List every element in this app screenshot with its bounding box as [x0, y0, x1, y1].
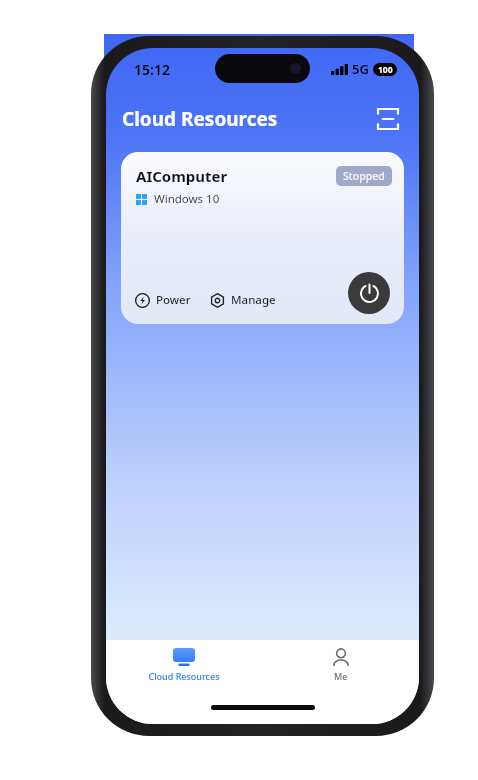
staticText: Power — [156, 292, 191, 308]
button[interactable]: AIComputer — [121, 152, 404, 324]
button[interactable]: Power on — [348, 272, 390, 314]
staticText: AIComputer — [136, 166, 228, 186]
button[interactable]: Power — [135, 292, 191, 308]
staticText: Windows 10 — [154, 191, 220, 207]
staticText: Manage — [231, 292, 276, 308]
staticText: 15:12 — [134, 60, 170, 79]
staticText: Stopped — [343, 169, 385, 183]
button[interactable]: Manage — [210, 292, 276, 308]
staticText: 100 — [378, 64, 393, 76]
button[interactable]: Cloud Resources — [136, 645, 232, 685]
button[interactable]: Me — [319, 645, 363, 685]
staticText: 5G — [352, 60, 369, 78]
staticText: Cloud Resources — [122, 106, 278, 132]
button[interactable]: Menu — [373, 104, 403, 134]
staticText: Cloud Resources — [148, 670, 220, 682]
staticText: Me — [334, 670, 348, 682]
